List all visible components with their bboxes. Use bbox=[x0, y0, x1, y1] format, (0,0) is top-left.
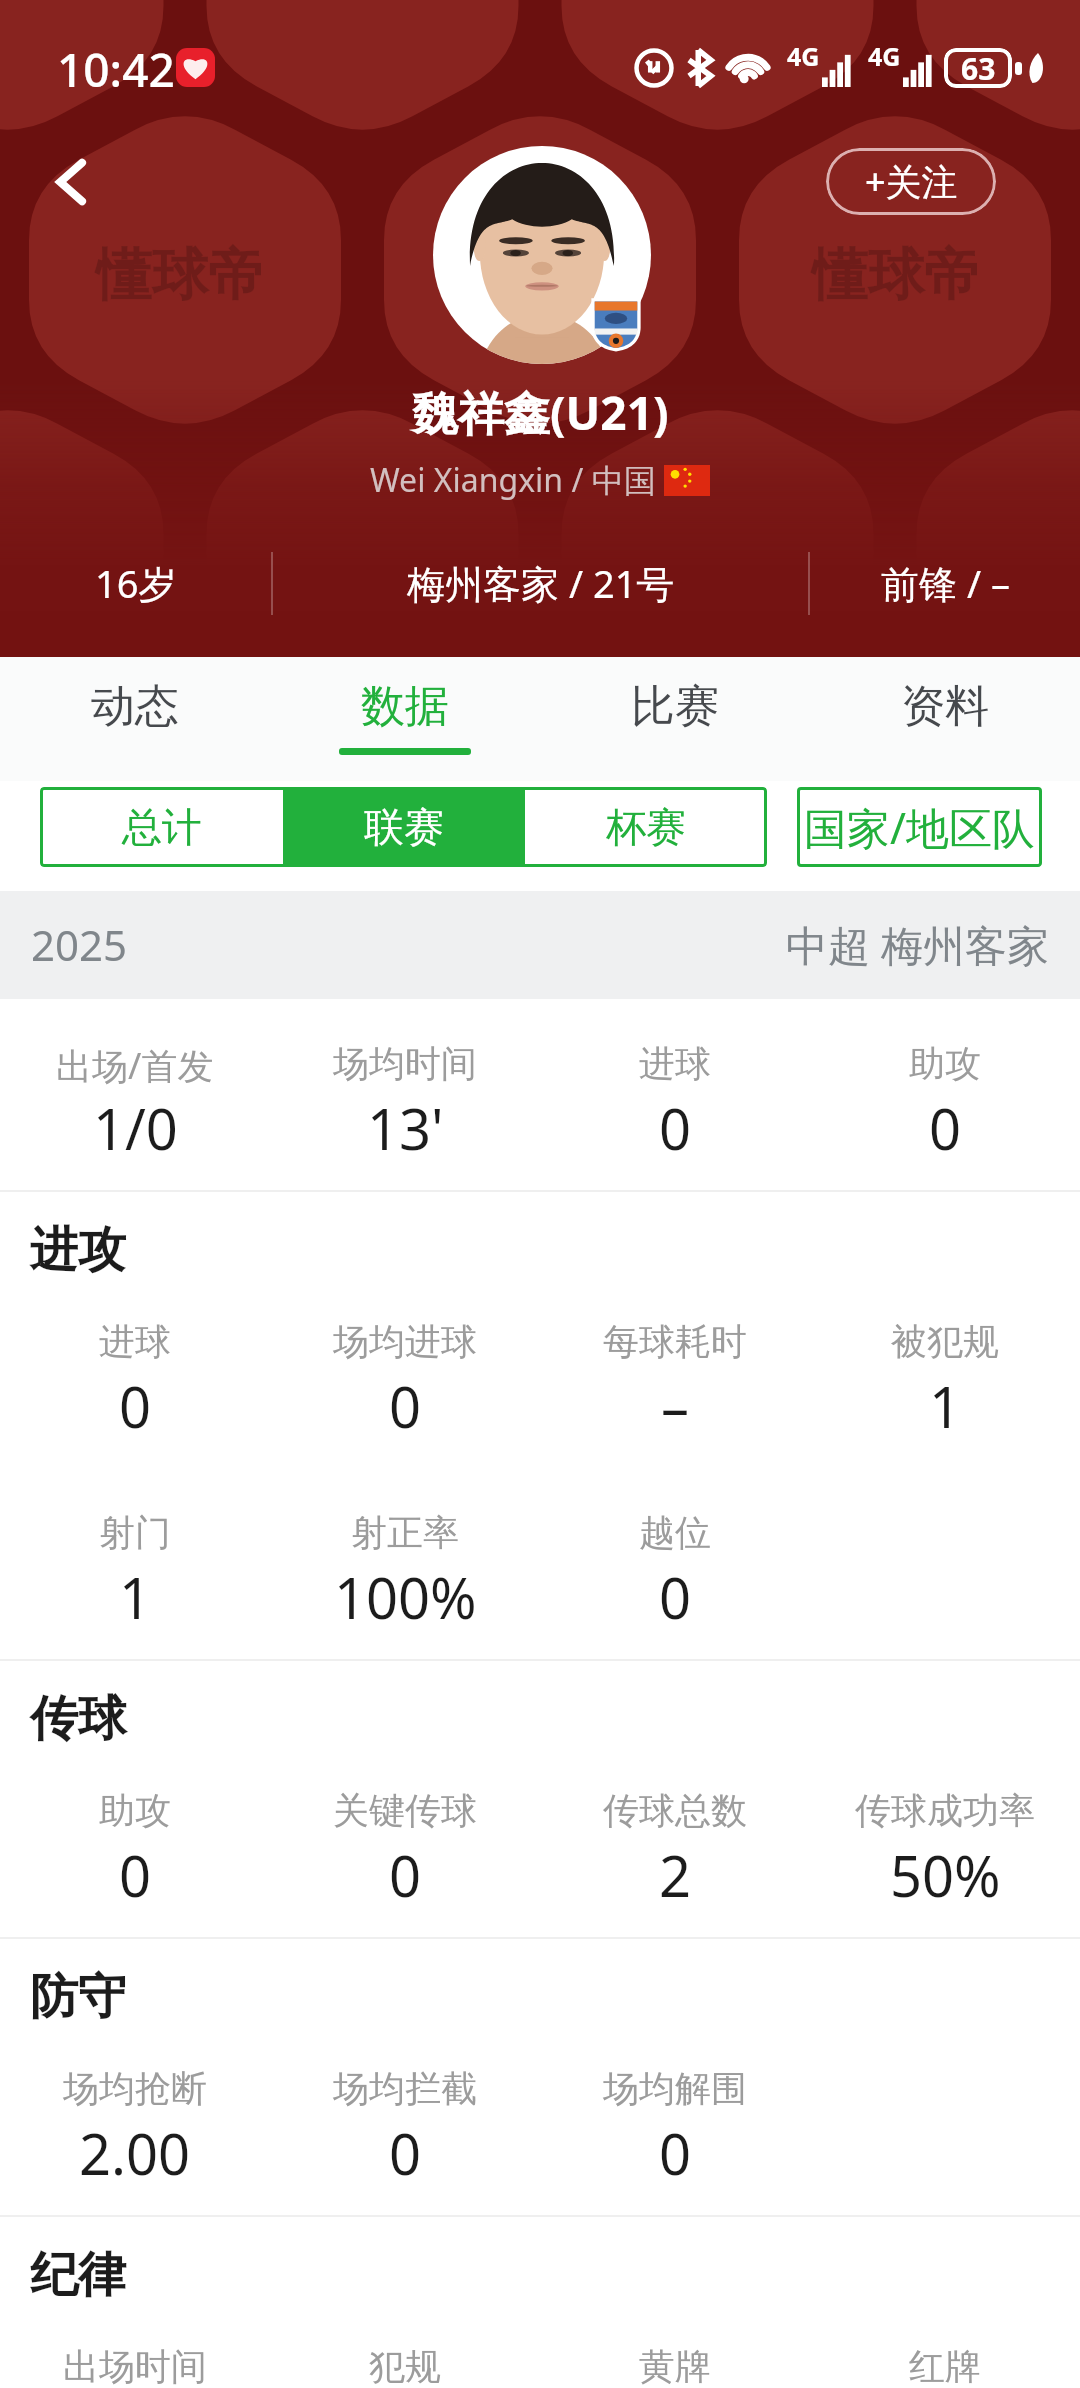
staticText: 联赛 bbox=[364, 802, 444, 852]
staticText: 4G bbox=[787, 39, 820, 73]
staticText: – bbox=[661, 1368, 689, 1444]
staticText: 场均抢断 bbox=[63, 2066, 207, 2111]
staticText: 总计 bbox=[122, 802, 202, 852]
staticText: 传球 bbox=[30, 1689, 126, 1749]
staticText: 0 bbox=[389, 1368, 422, 1444]
button[interactable]: Back bbox=[30, 140, 114, 224]
staticText: 比赛 bbox=[631, 679, 719, 734]
staticText: 每球耗时 bbox=[603, 1319, 747, 1364]
staticText: 前锋 / – bbox=[881, 557, 1010, 609]
staticText: 0 bbox=[659, 1090, 692, 1166]
staticText: 10:42 bbox=[57, 38, 175, 101]
button[interactable]: 动态 bbox=[0, 657, 270, 781]
staticText: 0 bbox=[389, 2115, 422, 2191]
staticText: 犯规 bbox=[369, 2344, 441, 2388]
staticText: 1 bbox=[119, 1559, 152, 1635]
staticText: 13' bbox=[367, 1090, 444, 1166]
staticText: 50% bbox=[890, 1837, 1001, 1913]
staticText: 助攻 bbox=[909, 1041, 981, 1086]
staticText: 1 bbox=[929, 1368, 962, 1444]
staticText: 2025 bbox=[31, 916, 128, 973]
staticText: 红牌 bbox=[909, 2344, 981, 2388]
staticText: 进球 bbox=[99, 1319, 171, 1364]
staticText: Wei Xiangxin / 中国 bbox=[370, 458, 664, 502]
staticText: 关键传球 bbox=[333, 1788, 477, 1833]
staticText: 4G bbox=[868, 39, 901, 73]
staticText: 2.00 bbox=[79, 2115, 191, 2191]
staticText: 2 bbox=[659, 1837, 692, 1913]
staticText: 国家/地区队 bbox=[804, 798, 1035, 857]
staticText: 0 bbox=[659, 1559, 692, 1635]
staticText: 16岁 bbox=[95, 557, 177, 609]
staticText: 黄牌 bbox=[639, 2344, 711, 2388]
button[interactable]: Player photo bbox=[433, 146, 651, 364]
staticText: 越位 bbox=[639, 1510, 711, 1555]
staticText: 进球 bbox=[639, 1041, 711, 1086]
staticText: 63 bbox=[961, 48, 996, 88]
staticText: 传球成功率 bbox=[855, 1788, 1035, 1833]
staticText: 进攻 bbox=[30, 1220, 126, 1280]
staticText: 0 bbox=[659, 2115, 692, 2191]
staticText: 懂球帝 bbox=[812, 240, 980, 311]
button[interactable]: 总计 bbox=[40, 787, 283, 867]
staticText: 懂球帝 bbox=[96, 240, 264, 311]
staticText: 出场时间 bbox=[63, 2344, 207, 2388]
button[interactable]: 资料 bbox=[810, 657, 1080, 781]
staticText: 0 bbox=[119, 1837, 152, 1913]
staticText: 动态 bbox=[91, 679, 179, 734]
staticText: 出场/首发 bbox=[56, 1041, 214, 1090]
staticText: 场均进球 bbox=[333, 1319, 477, 1364]
button[interactable]: 联赛 bbox=[283, 787, 525, 867]
staticText: 纪律 bbox=[30, 2245, 126, 2305]
staticText: 中超 梅州客家 bbox=[786, 916, 1049, 973]
staticText: 传球总数 bbox=[603, 1788, 747, 1833]
staticText: 场均时间 bbox=[333, 1041, 477, 1086]
button[interactable]: 杯赛 bbox=[525, 787, 767, 867]
staticText: 1/0 bbox=[93, 1090, 178, 1166]
staticText: 被犯规 bbox=[891, 1319, 999, 1364]
staticText: 场均拦截 bbox=[333, 2066, 477, 2111]
staticText: 0 bbox=[119, 1368, 152, 1444]
staticText: 杯赛 bbox=[606, 802, 686, 852]
button[interactable]: 2025 bbox=[0, 891, 1080, 999]
button[interactable]: 比赛 bbox=[540, 657, 810, 781]
staticText: 0 bbox=[929, 1090, 962, 1166]
staticText: 资料 bbox=[901, 679, 989, 734]
staticText: 魏祥鑫(U21) bbox=[412, 381, 669, 444]
staticText: 100% bbox=[334, 1559, 477, 1635]
staticText: 防守 bbox=[30, 1967, 126, 2027]
staticText: 梅州客家 / 21号 bbox=[407, 557, 675, 609]
staticText: 射正率 bbox=[351, 1510, 459, 1555]
button[interactable]: 数据 bbox=[270, 657, 540, 781]
staticText: +关注 bbox=[865, 157, 958, 206]
button[interactable]: 国家/地区队 bbox=[797, 787, 1042, 867]
staticText: 助攻 bbox=[99, 1788, 171, 1833]
staticText: 场均解围 bbox=[603, 2066, 747, 2111]
staticText: 射门 bbox=[99, 1510, 171, 1555]
staticText: 数据 bbox=[361, 679, 449, 734]
button[interactable]: +关注 bbox=[826, 148, 996, 215]
staticText: 0 bbox=[389, 1837, 422, 1913]
